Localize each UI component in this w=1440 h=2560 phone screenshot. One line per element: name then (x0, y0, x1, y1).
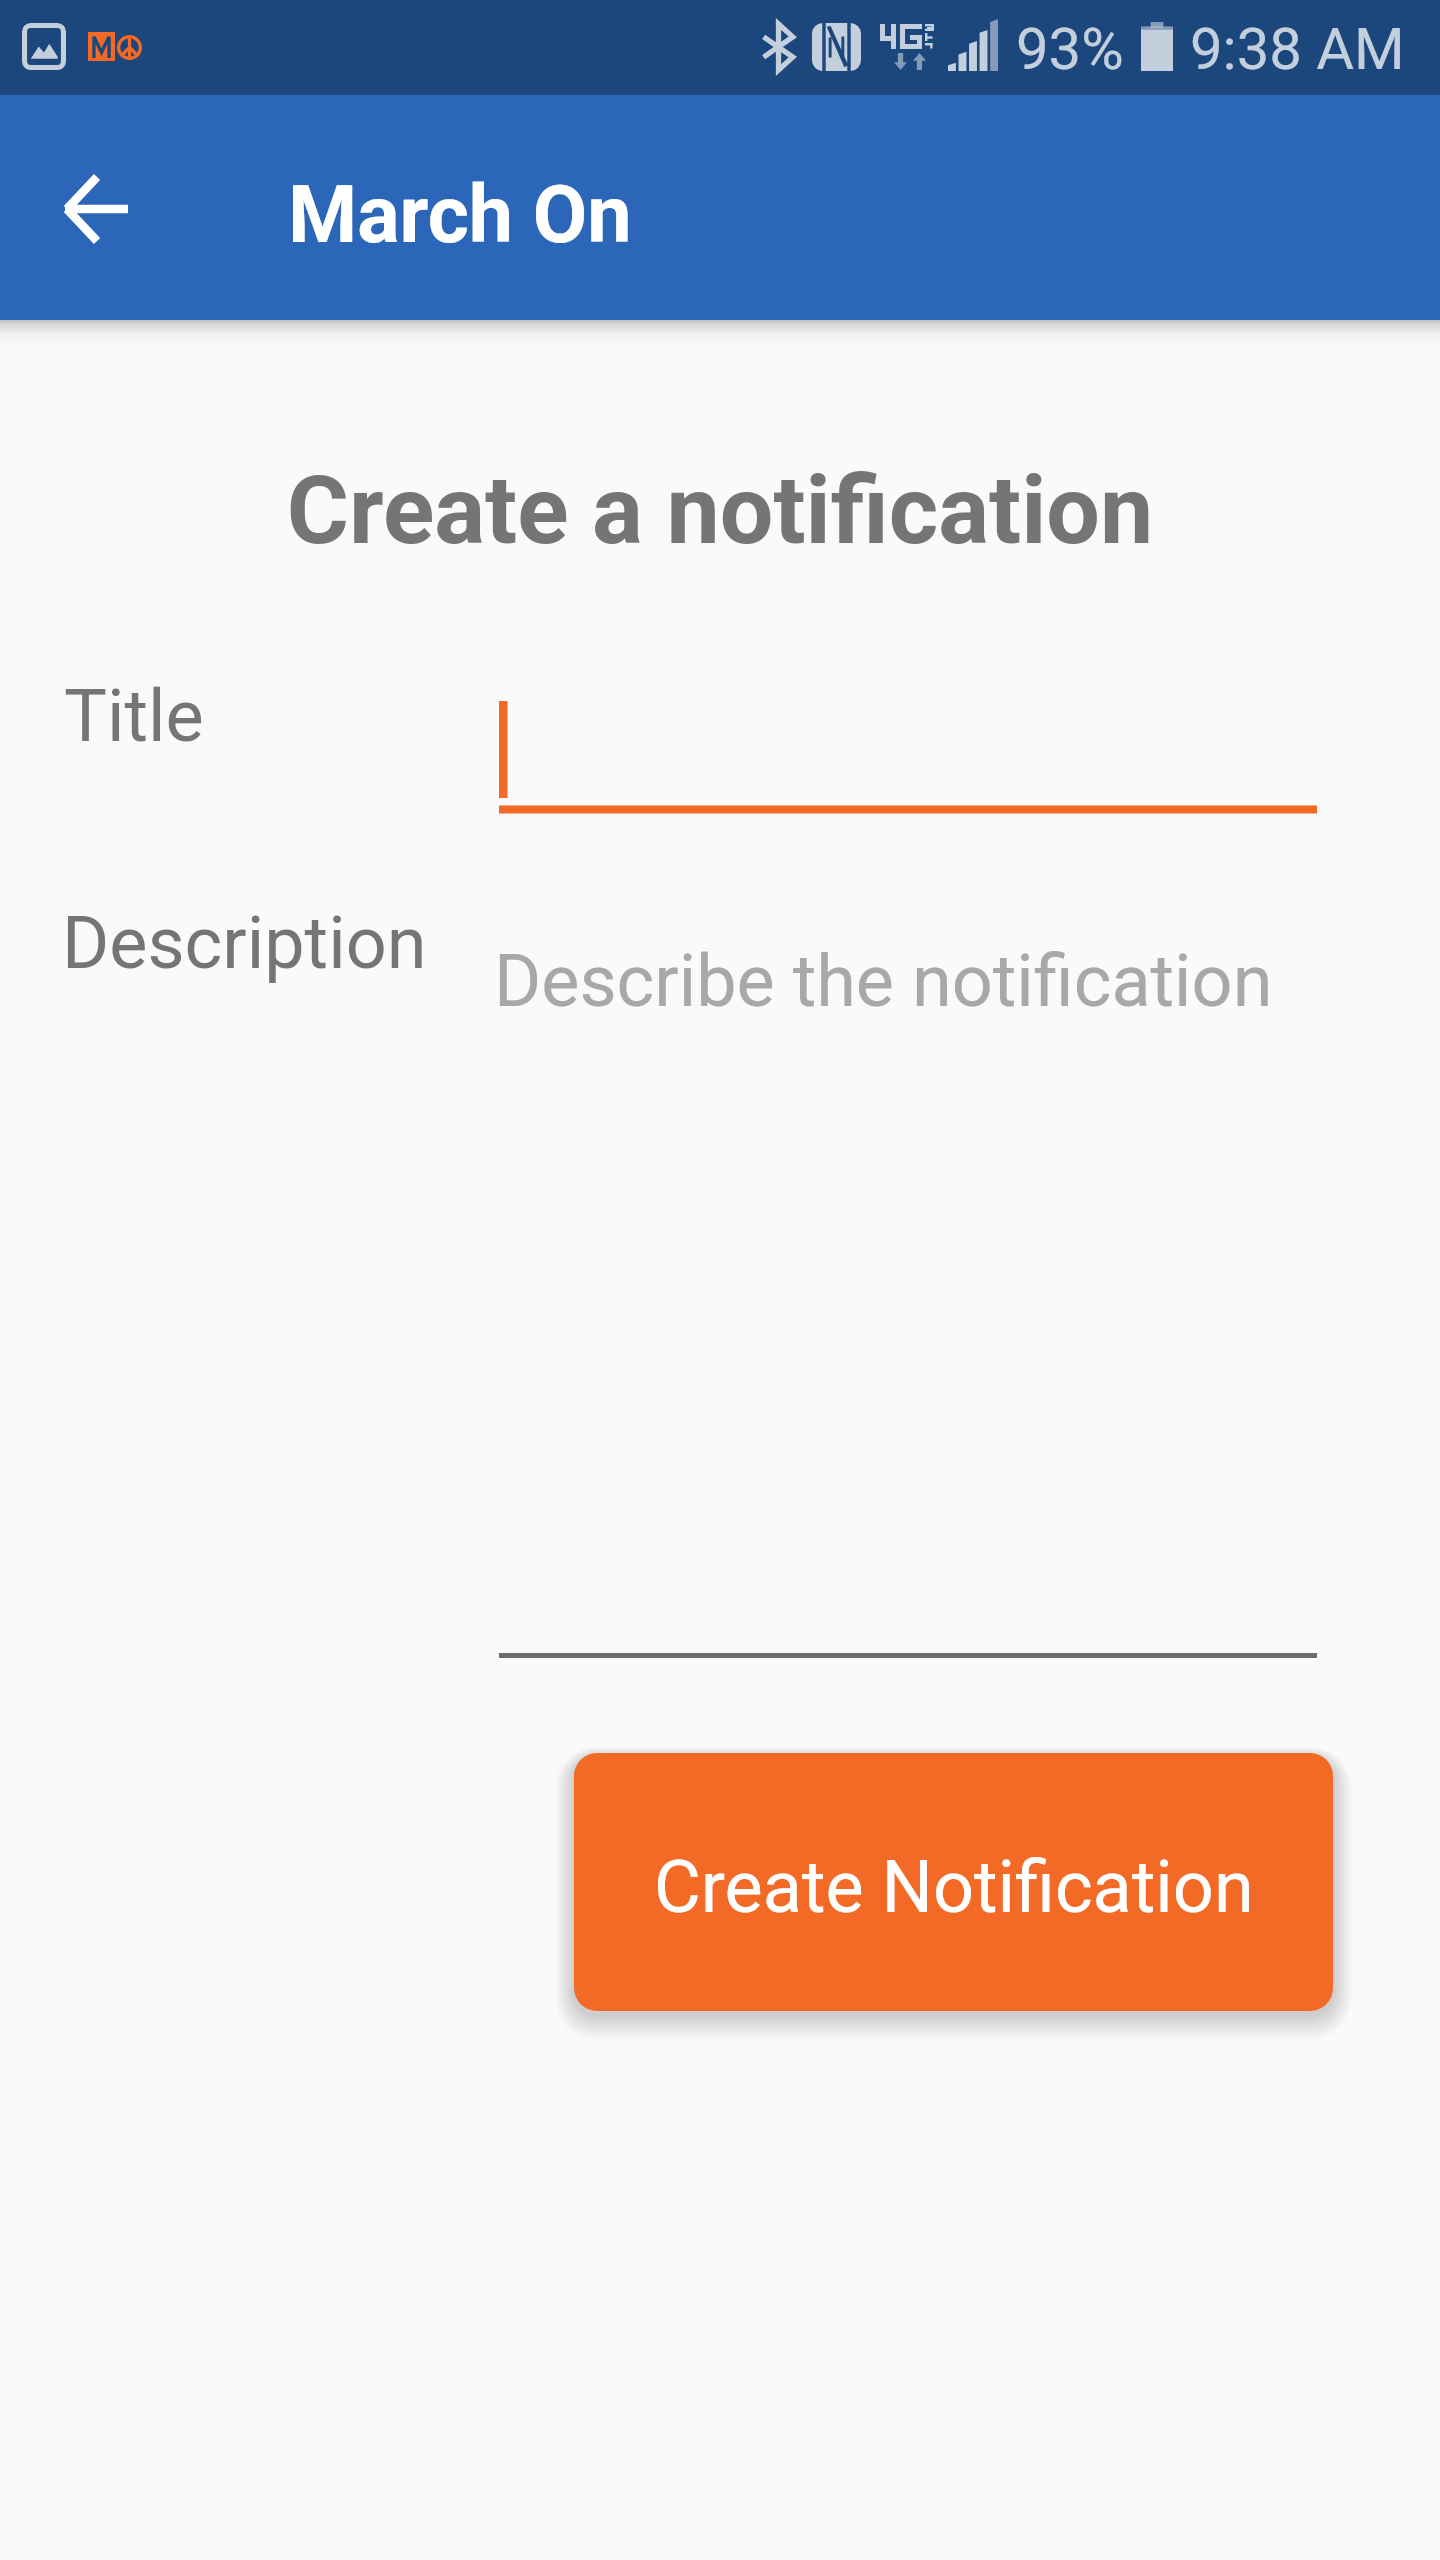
button[interactable]: Description input field (499, 930, 1317, 1658)
button[interactable]: Create Notification (574, 1753, 1333, 2011)
staticText: Create Notification (654, 1845, 1254, 1929)
button[interactable]: Title input field (499, 690, 1317, 820)
staticText: Description (62, 901, 427, 985)
staticText: Title (64, 674, 204, 758)
staticText: March On (288, 169, 632, 262)
staticText: 9:38 AM (1190, 15, 1405, 83)
staticText: Create a notification (0, 455, 1440, 566)
staticText: Describe the notification (494, 939, 1273, 1023)
button[interactable]: Navigate up (32, 145, 160, 273)
staticText: 93% (1016, 15, 1124, 83)
